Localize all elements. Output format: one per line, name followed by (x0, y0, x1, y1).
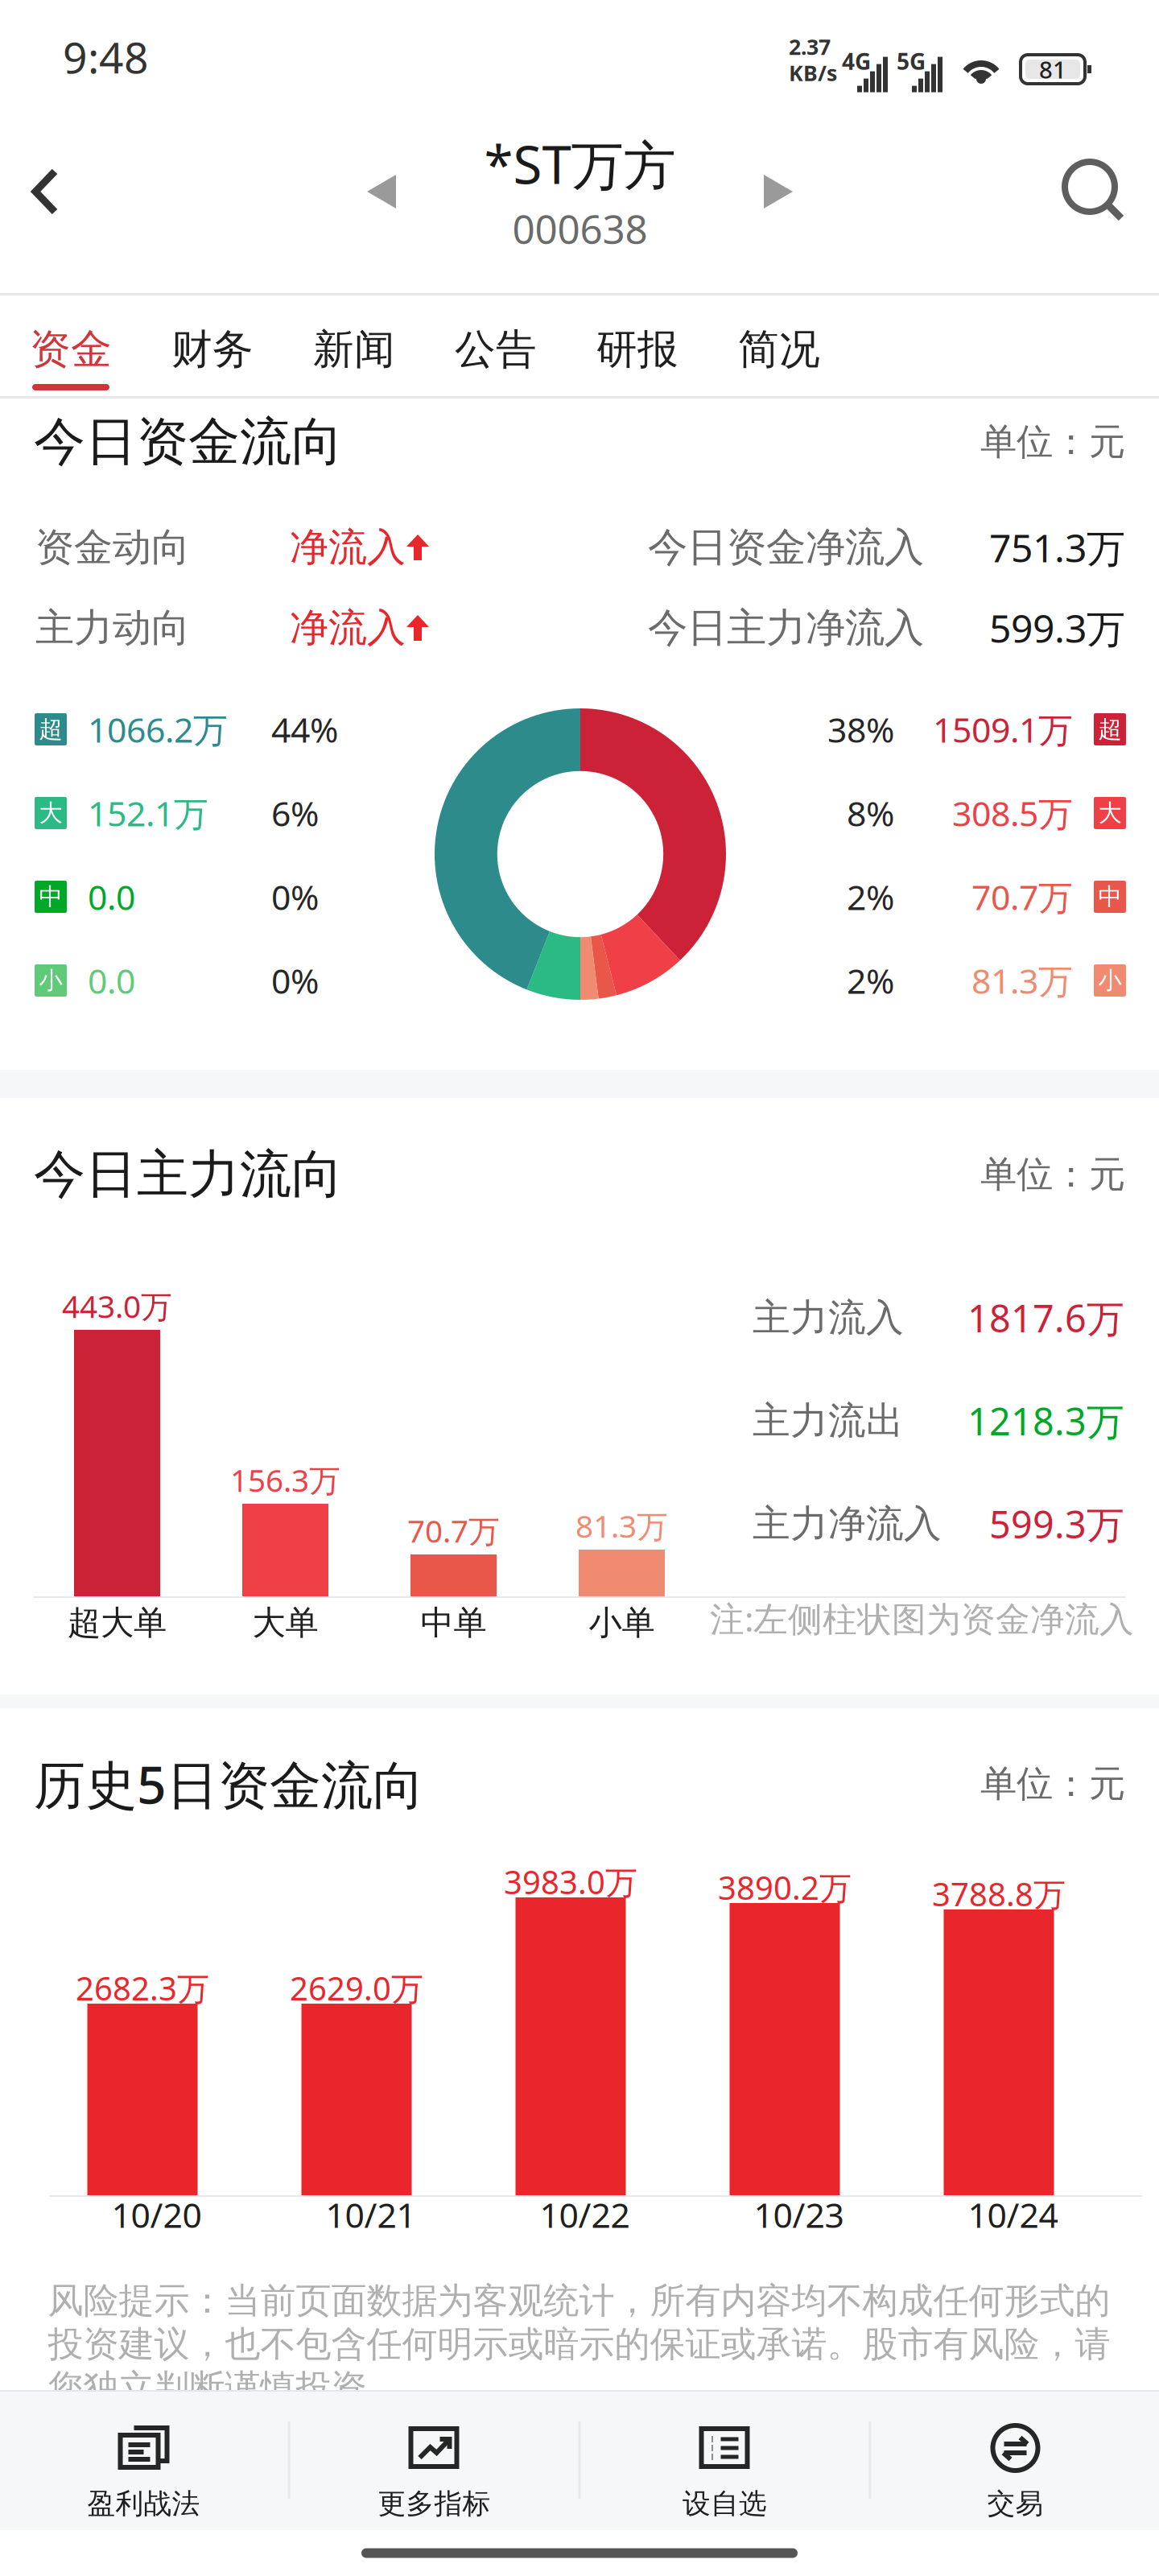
staticText: 5G (897, 46, 926, 76)
staticText: 1066.2万 (88, 707, 228, 752)
staticText: 2% (847, 958, 894, 1003)
staticText: 主力流出 (753, 1398, 904, 1444)
button[interactable]: 搜索 (1065, 90, 1159, 293)
staticText: 0% (271, 874, 319, 920)
button[interactable]: 下一只股票 (764, 90, 1065, 293)
button[interactable]: 研报 (567, 295, 708, 396)
staticText: 新闻 (313, 324, 395, 374)
staticText: 599.3万 (989, 602, 1125, 653)
staticText: 单位：元 (980, 420, 1125, 464)
staticText: 中单 (421, 1602, 487, 1643)
staticText: 10/21 (326, 2192, 416, 2237)
staticText: *ST万方 (484, 129, 676, 199)
staticText: 38% (827, 707, 894, 752)
staticText: 单位：元 (980, 1762, 1125, 1806)
button[interactable]: 财务 (142, 295, 283, 396)
staticText: 10/22 (540, 2192, 630, 2237)
staticText: 超 (39, 715, 62, 744)
staticText: 1218.3万 (967, 1396, 1124, 1446)
staticText: 单位：元 (980, 1152, 1125, 1197)
staticText: 3890.2万 (718, 1866, 852, 1909)
staticText: 中 (1098, 882, 1122, 911)
staticText: 历史5日资金流向 (34, 1750, 424, 1818)
staticText: 公告 (455, 324, 537, 374)
staticText: 简况 (738, 324, 820, 374)
staticText: 今日主力流向 (34, 1143, 343, 1206)
button[interactable]: 设自选 (581, 2390, 869, 2530)
staticText: 大单 (252, 1602, 318, 1643)
staticText: 大 (39, 799, 62, 828)
staticText: 净流入 (290, 604, 406, 652)
staticText: 资金动向 (35, 524, 190, 571)
staticText: 2629.0万 (290, 1967, 423, 2009)
staticText: 超 (1098, 715, 1122, 744)
staticText: 大 (1098, 799, 1122, 828)
staticText: 599.3万 (989, 1499, 1124, 1549)
staticText: 9:48 (63, 28, 149, 85)
staticText: 主力流入 (753, 1295, 904, 1341)
button[interactable]: 资金 (0, 295, 142, 396)
staticText: 0% (271, 958, 319, 1003)
staticText: 2682.3万 (76, 1967, 209, 2009)
staticText: 中 (39, 882, 62, 911)
button[interactable]: 返回 (0, 90, 90, 293)
staticText: 70.7万 (971, 874, 1073, 920)
staticText: 3788.8万 (932, 1872, 1066, 1915)
staticText: 小 (39, 966, 62, 995)
staticText: 4G (842, 46, 871, 76)
staticText: 10/24 (968, 2192, 1058, 2237)
button[interactable]: 新闻 (283, 295, 425, 396)
staticText: 81 (1039, 54, 1066, 85)
staticText: 今日主力净流入 (648, 604, 924, 652)
staticText: 超大单 (68, 1602, 167, 1643)
staticText: 8% (847, 790, 894, 836)
staticText: 152.1万 (88, 790, 208, 836)
staticText: 净流入 (290, 524, 406, 571)
staticText: 751.3万 (989, 522, 1125, 573)
staticText: 2.37 (789, 32, 831, 61)
button[interactable]: 公告 (425, 295, 567, 396)
staticText: 0.0 (88, 874, 135, 920)
staticText: 81.3万 (971, 958, 1073, 1003)
staticText: 000638 (512, 202, 648, 255)
staticText: 财务 (171, 324, 254, 374)
staticText: 0.0 (88, 958, 135, 1003)
button[interactable]: 交易 (871, 2390, 1159, 2530)
button[interactable]: 盈利战法 (0, 2390, 288, 2530)
staticText: 81.3万 (575, 1505, 668, 1546)
staticText: 主力净流入 (753, 1501, 942, 1547)
staticText: 443.0万 (62, 1285, 172, 1327)
staticText: 156.3万 (230, 1459, 340, 1501)
staticText: 308.5万 (952, 790, 1073, 836)
staticText: 今日资金流向 (34, 410, 343, 474)
staticText: 1509.1万 (933, 707, 1073, 752)
button[interactable]: 更多指标 (290, 2390, 578, 2530)
staticText: 44% (271, 707, 338, 752)
staticText: 风险提示：当前页面数据为客观统计，所有内容均不构成任何形式的投资建议，也不包含任… (48, 2279, 1110, 2409)
staticText: 70.7万 (407, 1510, 500, 1551)
staticText: KB/s (789, 58, 837, 87)
staticText: 小 (1098, 966, 1122, 995)
staticText: 3983.0万 (504, 1860, 637, 1903)
staticText: 6% (271, 790, 319, 836)
staticText: 小单 (589, 1602, 655, 1643)
staticText: 盈利战法 (87, 2487, 200, 2521)
staticText: 研报 (596, 324, 678, 374)
staticText: 10/23 (754, 2192, 844, 2237)
button[interactable]: 简况 (708, 295, 850, 396)
staticText: 资金 (30, 324, 112, 374)
staticText: 设自选 (683, 2487, 767, 2521)
staticText: 注:左侧柱状图为资金净流入 (710, 1596, 1134, 1641)
button[interactable]: 上一只股票 (90, 90, 396, 293)
staticText: 主力动向 (35, 604, 190, 652)
staticText: 交易 (987, 2487, 1044, 2521)
staticText: 今日资金净流入 (648, 523, 924, 572)
staticText: 更多指标 (378, 2487, 491, 2521)
staticText: 2% (847, 874, 894, 920)
staticText: 10/20 (111, 2192, 202, 2237)
staticText: 1817.6万 (967, 1293, 1124, 1343)
